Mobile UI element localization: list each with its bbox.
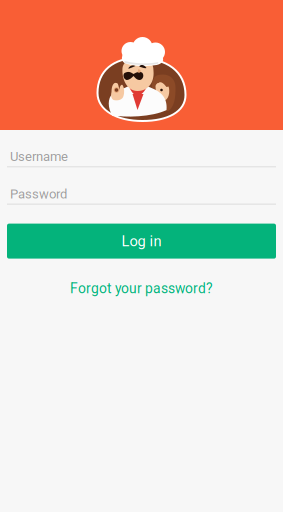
button[interactable]: Forgot your password? [7, 275, 276, 303]
staticText: Password [10, 186, 67, 202]
button[interactable]: Log in [7, 224, 276, 259]
staticText: Forgot your password? [70, 280, 213, 297]
staticText: Log in [121, 232, 161, 250]
staticText: Username [10, 149, 68, 164]
